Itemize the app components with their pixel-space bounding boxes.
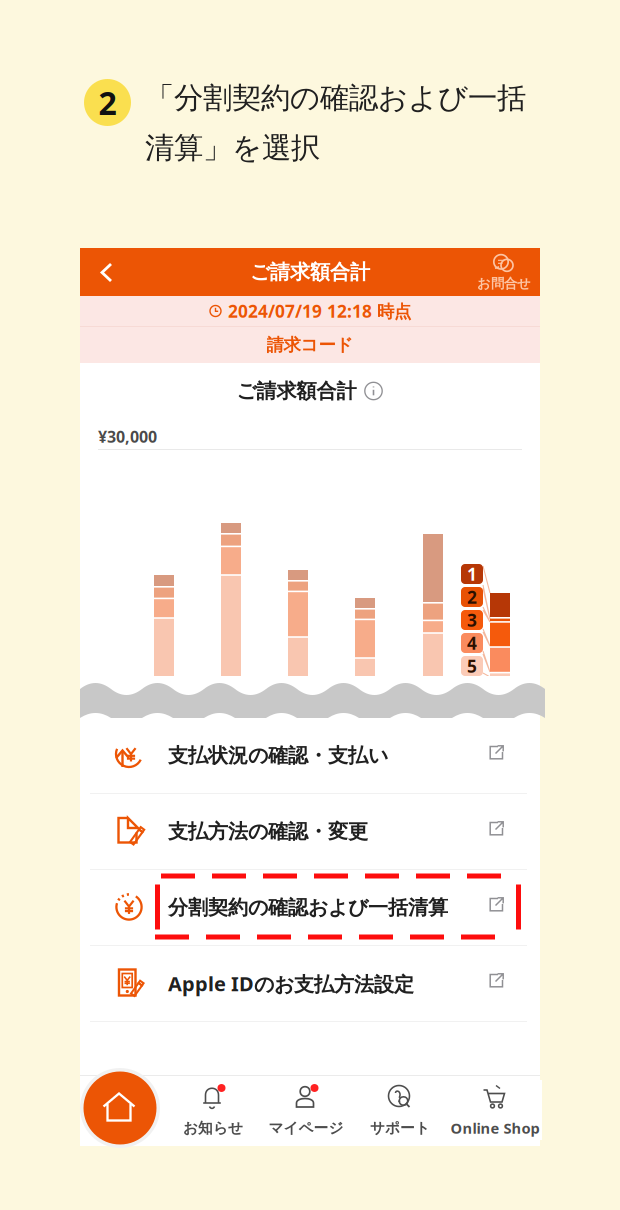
staticText: 支払状況の確認・支払い: [168, 743, 388, 768]
staticText: 請求コード: [266, 334, 353, 356]
button[interactable]: ホーム: [78, 1066, 162, 1150]
button[interactable]: サポート: [353, 1080, 447, 1140]
staticText: 3: [467, 608, 477, 631]
staticText: ¥30,000: [98, 426, 157, 447]
staticText: マイページ: [268, 1119, 343, 1137]
staticText: 分割契約の確認および一括清算: [168, 895, 448, 920]
staticText: 清算」を選択: [145, 130, 320, 166]
button[interactable]: マイページ: [259, 1080, 353, 1140]
button[interactable]: Apple IDのお支払方法設定: [80, 946, 540, 1021]
staticText: 2: [98, 81, 116, 124]
button[interactable]: 戻る: [86, 248, 130, 296]
staticText: 2024/07/19 12:18 時点: [228, 299, 411, 322]
button[interactable]: 支払方法の確認・変更: [80, 794, 540, 869]
staticText: 支払方法の確認・変更: [168, 819, 368, 844]
staticText: ご請求額合計: [236, 379, 356, 403]
staticText: お問合せ: [477, 275, 531, 292]
button[interactable]: お知らせ: [166, 1080, 260, 1140]
staticText: サポート: [370, 1119, 430, 1137]
staticText: 2: [467, 585, 477, 608]
staticText: お知らせ: [183, 1119, 243, 1137]
button[interactable]: お問合せ: [472, 248, 536, 296]
button[interactable]: 支払状況の確認・支払い: [80, 718, 540, 793]
staticText: Apple IDのお支払方法設定: [168, 970, 414, 997]
button[interactable]: Online Shop: [448, 1080, 542, 1140]
button[interactable]: 分割契約の確認および一括清算: [80, 870, 540, 945]
staticText: 1: [467, 562, 477, 585]
staticText: Online Shop: [450, 1118, 539, 1138]
staticText: 5: [467, 654, 477, 677]
staticText: 「分割契約の確認および一括: [145, 80, 526, 116]
staticText: ご請求額合計: [250, 260, 370, 284]
staticText: 4: [467, 631, 477, 654]
